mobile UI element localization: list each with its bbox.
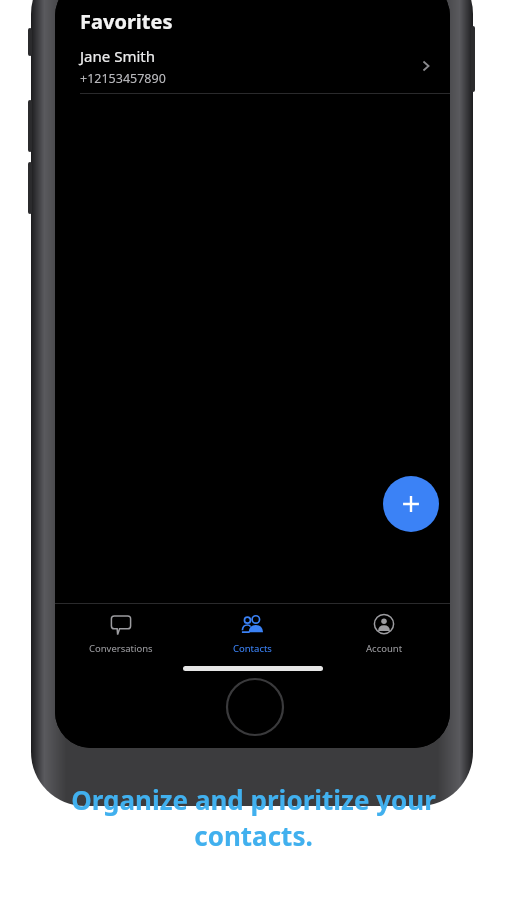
other: Home [224, 676, 286, 738]
staticText: Account [366, 642, 403, 655]
button[interactable]: Account [318, 604, 450, 655]
button[interactable]: Contacts [186, 604, 318, 655]
staticText: Organize and prioritize your contacts. [28, 782, 479, 854]
staticText: +12153457890 [80, 70, 166, 87]
button[interactable]: Conversations [55, 604, 186, 655]
button[interactable]: Jane Smith [55, 39, 450, 93]
staticText: Jane Smith [80, 46, 155, 66]
button[interactable]: Add contact [383, 476, 439, 532]
staticText: Contacts [233, 642, 272, 655]
staticText: Favorites [80, 8, 173, 35]
staticText: Conversations [89, 642, 153, 655]
